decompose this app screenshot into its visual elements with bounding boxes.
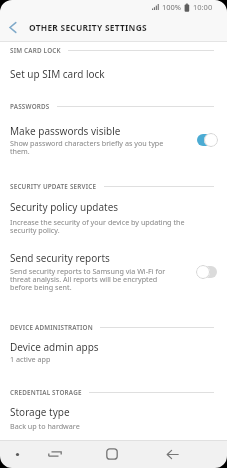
staticText: Security policy updates — [10, 200, 119, 214]
staticText: Back up to hardware — [10, 421, 80, 431]
button[interactable]: Set up SIM card lock — [0, 57, 227, 90]
staticText: 10:00 — [193, 2, 213, 12]
staticText: SIM CARD LOCK — [10, 46, 61, 55]
button[interactable] — [42, 441, 68, 467]
button[interactable] — [99, 441, 125, 467]
button[interactable]: Security policy updates — [0, 200, 227, 235]
staticText: Make passwords visible — [10, 124, 121, 138]
button[interactable] — [159, 441, 185, 467]
staticText: Send security reports — [10, 251, 110, 265]
staticText: PASSWORDS — [10, 102, 50, 111]
staticText: Device admin apps — [10, 340, 99, 354]
button[interactable]: Storage type — [0, 405, 227, 431]
button[interactable]: Send security reports — [0, 251, 227, 292]
staticText: CREDENTIAL STORAGE — [10, 388, 82, 397]
staticText: OTHER SECURITY SETTINGS — [29, 22, 147, 33]
button[interactable] — [9, 22, 17, 33]
staticText: DEVICE ADMINISTRATION — [10, 323, 93, 332]
button[interactable]: Make passwords visible — [0, 124, 227, 156]
staticText: Show password characters briefly as you … — [10, 138, 164, 156]
button[interactable]: Device admin apps — [0, 340, 227, 364]
staticText: SECURITY UPDATE SERVICE — [10, 182, 97, 191]
staticText: 100% — [162, 2, 182, 12]
staticText: Storage type — [10, 405, 70, 419]
staticText: 1 active app — [10, 354, 51, 364]
staticText: Send security reports to Samsung via Wi-… — [10, 266, 166, 292]
staticText: Set up SIM card lock — [10, 67, 105, 81]
staticText: Increase the security of your device by … — [10, 217, 185, 235]
button[interactable]: OTHER SECURITY SETTINGS — [0, 14, 227, 41]
